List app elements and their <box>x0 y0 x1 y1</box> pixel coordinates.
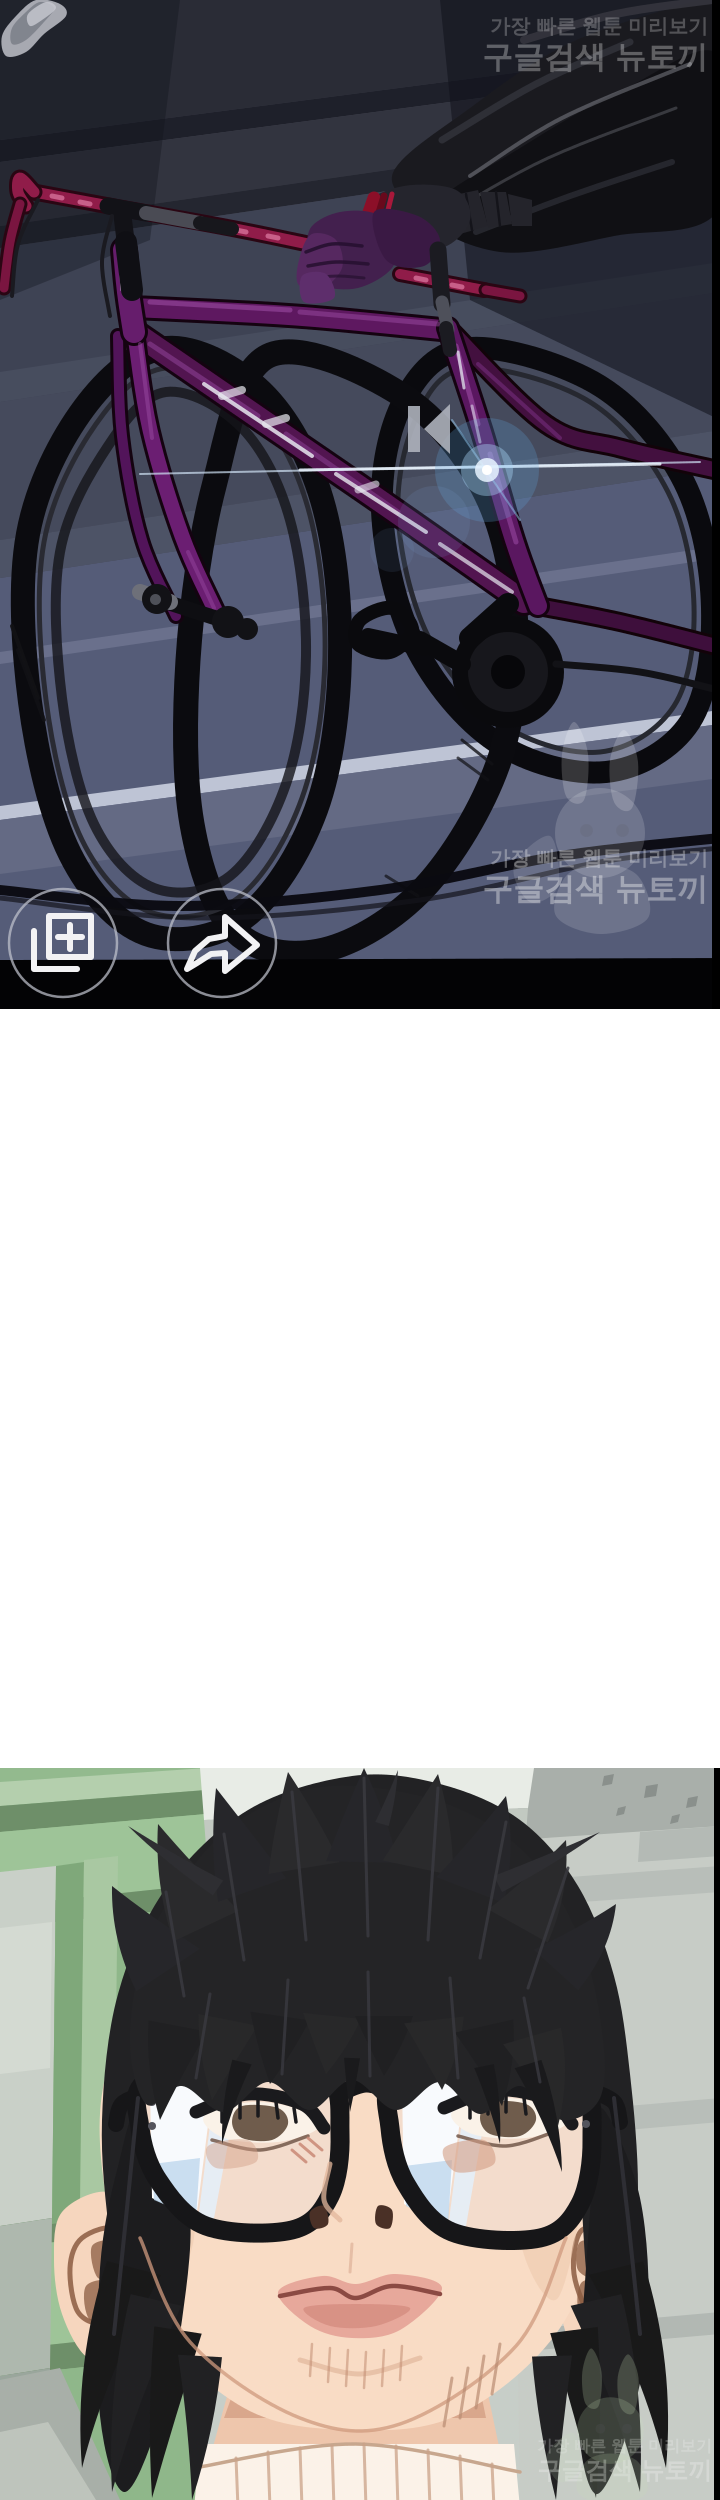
staticText: 가장 빠른 웹툰 미리보기 <box>490 846 708 871</box>
staticText: 가장 빠른 웹툰 미리보기 <box>490 14 708 39</box>
button[interactable]: Add to collection <box>7 887 119 999</box>
staticText: 가장 빠른 웹툰 미리보기 <box>537 2436 712 2456</box>
staticText: 구글검색 뉴토끼 <box>482 39 708 76</box>
button[interactable]: Share <box>166 887 278 999</box>
staticText: 구글검색 뉴토끼 <box>537 2456 712 2485</box>
staticText: 구글검색 뉴토끼 <box>482 871 708 908</box>
